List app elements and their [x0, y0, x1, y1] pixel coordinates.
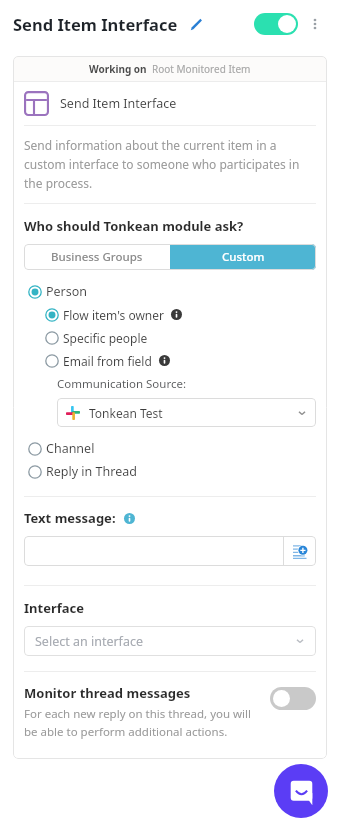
staticText: Email from field: [63, 353, 152, 369]
staticText: For each new reply on this thread, you w…: [24, 706, 260, 739]
staticText: Root Monitored Item: [152, 62, 251, 76]
button[interactable]: Tonkean Test: [57, 398, 316, 427]
staticText: Specific people: [63, 330, 148, 346]
button[interactable]: Custom: [170, 244, 316, 270]
staticText: Reply in Thread: [46, 463, 137, 480]
button[interactable]: Person: [28, 280, 316, 303]
button[interactable]: Business Groups: [24, 244, 170, 270]
staticText: Flow item's owner: [63, 307, 164, 323]
staticText: Interface: [24, 599, 85, 617]
staticText: Custom: [222, 249, 265, 265]
button[interactable]: Select an interface: [24, 626, 316, 656]
staticText: Select an interface: [35, 633, 143, 650]
button[interactable]: Email from field: [45, 349, 316, 372]
staticText: Working on: [89, 62, 147, 76]
button[interactable]: Flow item's owner: [45, 303, 316, 326]
button[interactable]: Channel: [28, 437, 316, 460]
button[interactable]: [24, 536, 283, 566]
staticText: Send information about the current item …: [24, 137, 316, 191]
button[interactable]: More options: [302, 11, 328, 37]
staticText: Channel: [46, 440, 95, 457]
button[interactable]: Open chat support: [274, 764, 328, 818]
staticText: Send Item Interface: [13, 13, 178, 35]
staticText: Tonkean Test: [89, 405, 163, 421]
button[interactable]: Enable module: [252, 10, 300, 38]
staticText: Business Groups: [51, 249, 143, 265]
button[interactable]: Monitor thread messages toggle: [270, 687, 316, 710]
staticText: Send Item Interface: [60, 95, 177, 112]
button[interactable]: Edit name: [185, 13, 207, 35]
button[interactable]: Reply in Thread: [28, 460, 316, 483]
staticText: Monitor thread messages: [24, 684, 191, 702]
staticText: Who should Tonkean module ask?: [24, 217, 244, 235]
staticText: Person: [46, 283, 88, 300]
button[interactable]: Insert field: [284, 536, 316, 566]
staticText: Text message:: [24, 509, 116, 527]
staticText: Communication Source:: [57, 376, 187, 392]
button[interactable]: Specific people: [45, 326, 316, 349]
